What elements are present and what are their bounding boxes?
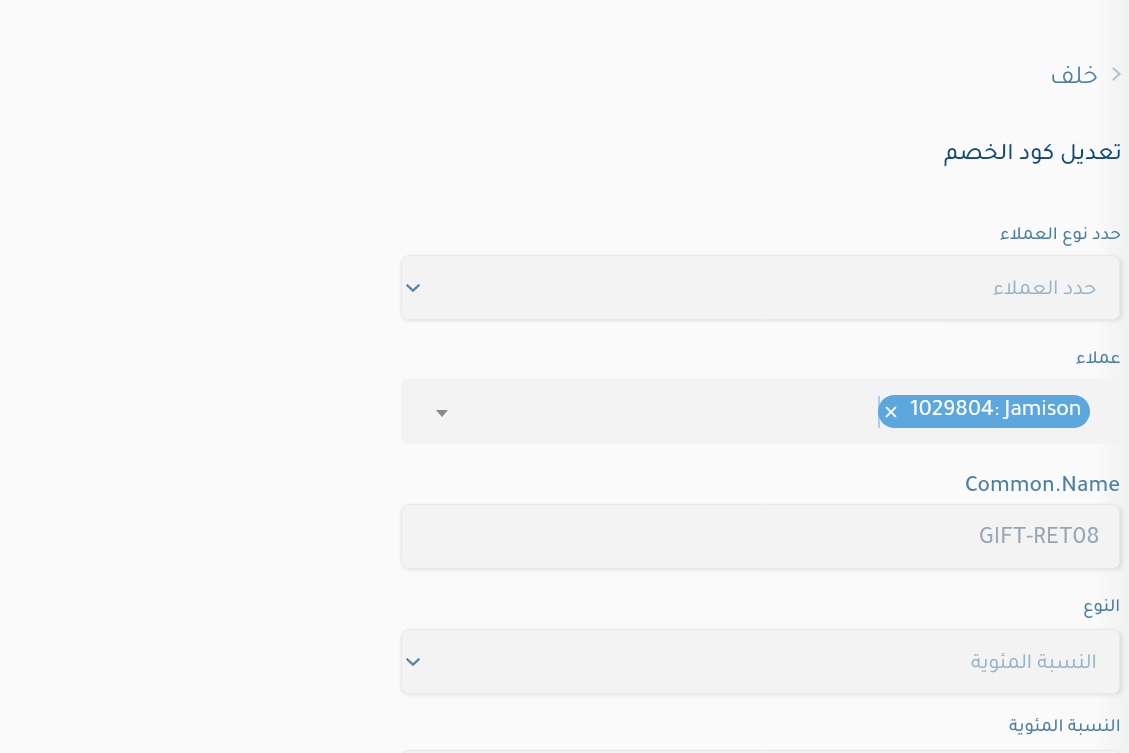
button[interactable]: النسبة المئوية [401,629,1120,694]
staticText: GIFT-RET08 [979,527,1100,552]
staticText: 1029804: Jamison [910,400,1082,424]
button[interactable]: GIFT-RET08 [401,504,1120,569]
staticText: Common.Name [965,476,1121,499]
staticText: حدد العملاء [993,280,1097,302]
staticText: النسبة المئوية [971,654,1097,676]
button[interactable]: Remove 1029804: Jamison [878,395,1090,428]
staticText: تعديل كود الخصم [944,144,1122,168]
button[interactable]: حدد العملاء [401,255,1120,320]
staticText: عملاء [1076,351,1121,370]
button[interactable]: Back [1046,63,1125,95]
button[interactable]: Remove 1029804: Jamison [401,379,1120,444]
button[interactable] [401,750,1120,753]
staticText: النسبة المئوية [1009,719,1121,738]
staticText: حدد نوع العملاء [1000,227,1121,246]
staticText: خلف [1050,66,1098,92]
other: Remove 1029804: Jamison [886,403,896,421]
staticText: النوع [1083,599,1121,618]
